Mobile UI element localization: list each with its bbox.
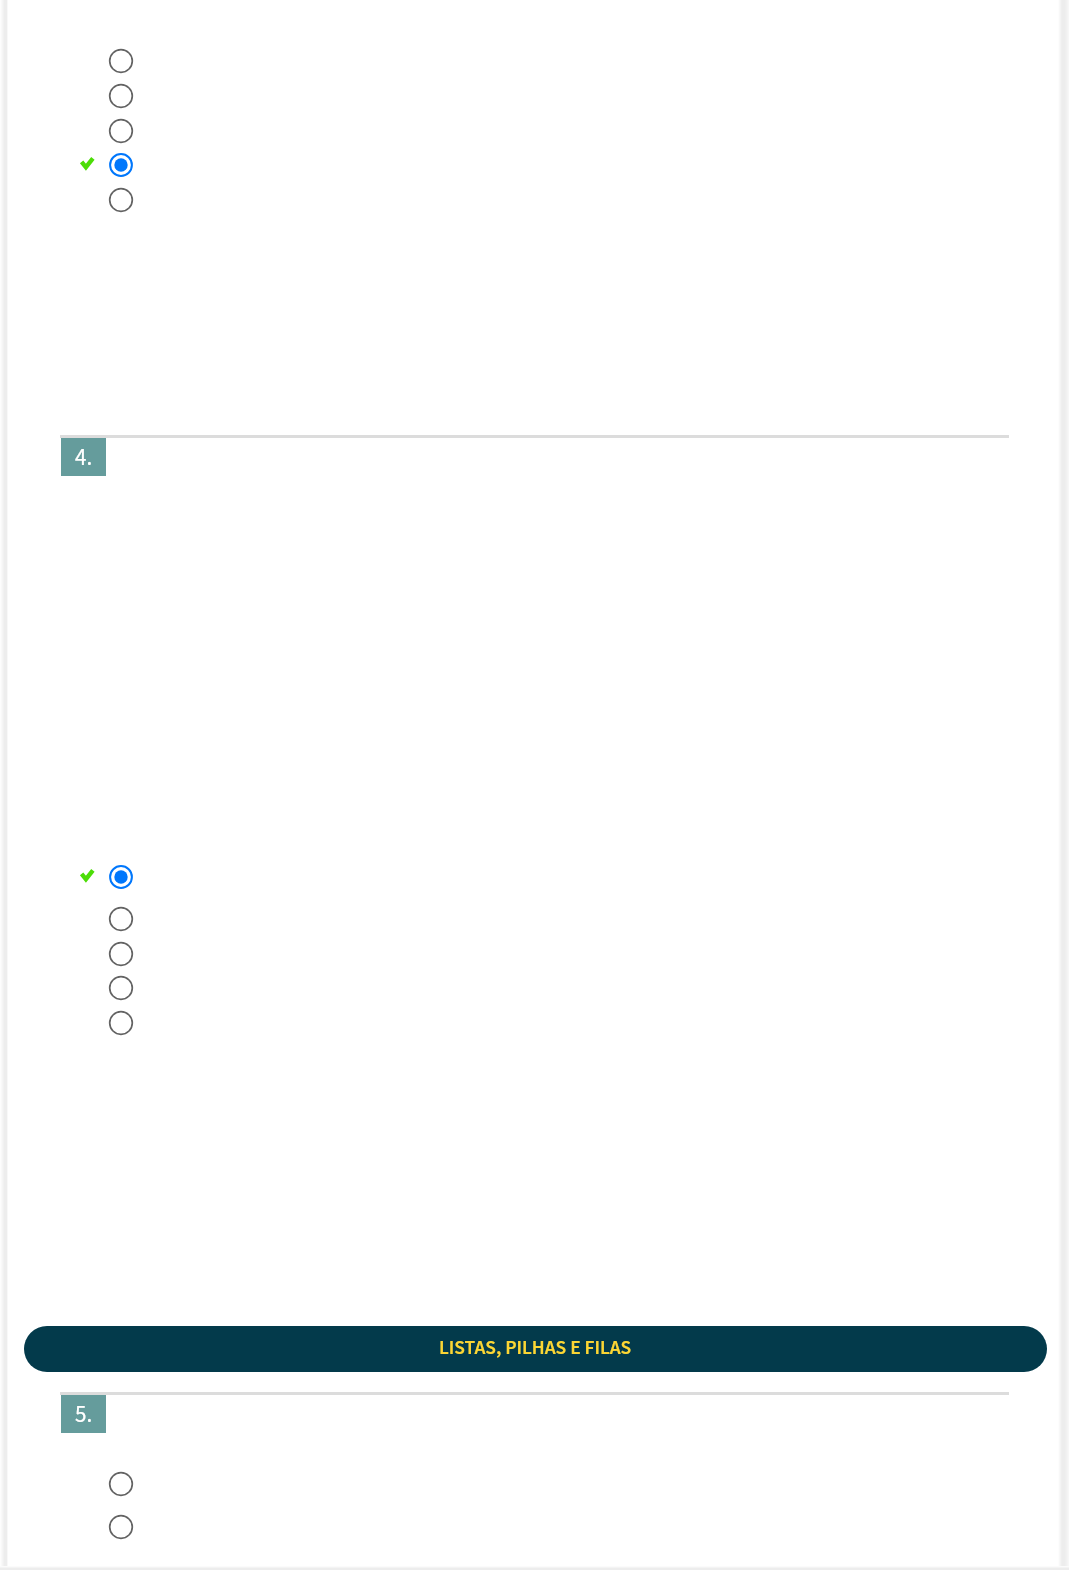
other: Correct answer <box>78 866 96 884</box>
button[interactable]: Answer option <box>105 1468 137 1500</box>
staticText: 5. <box>75 1398 93 1431</box>
staticText: 4. <box>75 441 93 474</box>
button[interactable]: Answer option <box>105 45 137 77</box>
other: Correct answer <box>78 154 96 172</box>
button[interactable]: Selected answer option <box>105 861 137 893</box>
button[interactable]: Answer option <box>105 115 137 147</box>
button[interactable]: LISTAS, PILHAS E FILAS <box>24 1326 1047 1372</box>
button[interactable]: 4. <box>61 438 106 476</box>
staticText: LISTAS, PILHAS E FILAS <box>439 1334 632 1362</box>
button[interactable]: Answer option <box>105 184 137 216</box>
button[interactable]: Answer option <box>105 972 137 1004</box>
button[interactable]: 5. <box>61 1395 106 1433</box>
button[interactable]: Selected answer option <box>105 149 137 181</box>
button[interactable]: Answer option <box>105 1007 137 1039</box>
button[interactable]: Answer option <box>105 80 137 112</box>
button[interactable]: Answer option <box>105 903 137 935</box>
button[interactable]: Answer option <box>105 938 137 970</box>
button[interactable]: Answer option <box>105 1511 137 1543</box>
